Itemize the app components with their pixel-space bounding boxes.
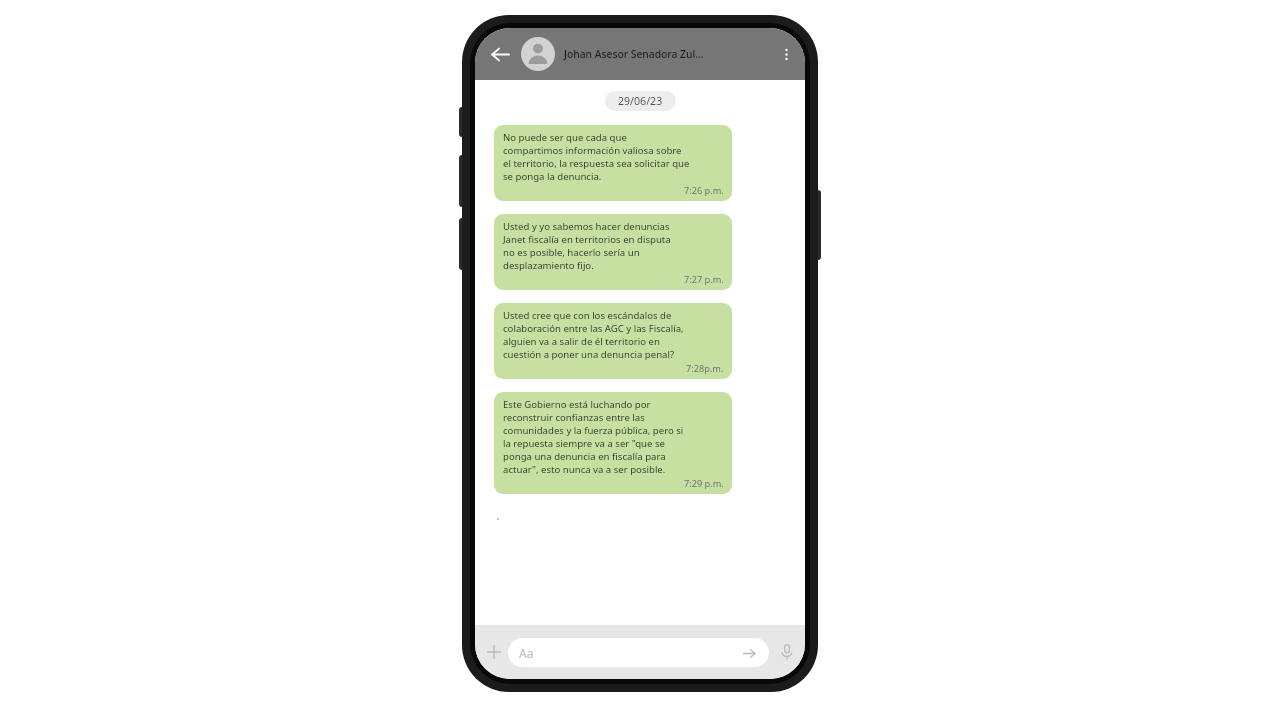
staticText: desplazamiento fijo. [503,259,594,272]
button[interactable]: Contact profile [521,37,555,71]
staticText: compartimos información valiosa sobre [503,144,682,157]
staticText: comunidades y la fuerza pública, pero si [503,424,684,437]
button[interactable]: Usted y yo sabemos hacer denuncias [494,214,732,290]
staticText: 7:26 p.m. [684,184,724,197]
staticText: alguien va a salir de él territorio en [503,335,660,348]
button[interactable]: Back [484,38,516,70]
staticText: No puede ser que cada que [503,131,627,144]
staticText: la repuesta siempre va a ser "que se [503,437,665,450]
staticText: se ponga la denuncia. [503,170,602,183]
button[interactable]: Voice message [774,639,800,665]
staticText: no es posible, hacerlo sería un [503,246,640,259]
staticText: 7:27 p.m. [684,273,724,286]
button[interactable]: Este Gobierno está luchando por [494,392,732,494]
staticText: colaboración entre las AGC y las Fiscalí… [503,322,684,335]
staticText: 7:29 p.m. [684,477,724,490]
staticText: cuestión a poner una denuncia penal? [503,348,675,361]
button[interactable]: No puede ser que cada que [494,125,732,201]
staticText: Janet fiscalía en territorios en disputa [503,233,671,246]
button[interactable]: Usted cree que con los escándalos de [494,303,732,379]
button[interactable]: Aa [508,638,769,667]
staticText: 7:28p.m. [686,362,724,375]
staticText: reconstruir confianzas entre las [503,411,645,424]
staticText: el territorio, la respuesta sea solicita… [503,157,690,170]
button[interactable]: 29/06/23 [605,91,676,111]
staticText: ponga una denuncia en fiscalía para [503,450,666,463]
staticText: Usted y yo sabemos hacer denuncias [503,220,670,233]
staticText: actuar", esto nunca va a ser posible. [503,463,666,476]
staticText: 29/06/23 [618,94,663,108]
staticText: Johan Asesor Senadora Zul... [564,47,704,61]
button[interactable]: Add attachment [481,639,507,665]
button[interactable]: More options [772,40,800,68]
staticText: Este Gobierno está luchando por [503,398,651,411]
staticText: Usted cree que con los escándalos de [503,309,672,322]
other: Send [740,644,758,662]
button[interactable]: Johan Asesor Senadora Zul... [564,47,772,61]
staticText: Aa [519,645,534,661]
